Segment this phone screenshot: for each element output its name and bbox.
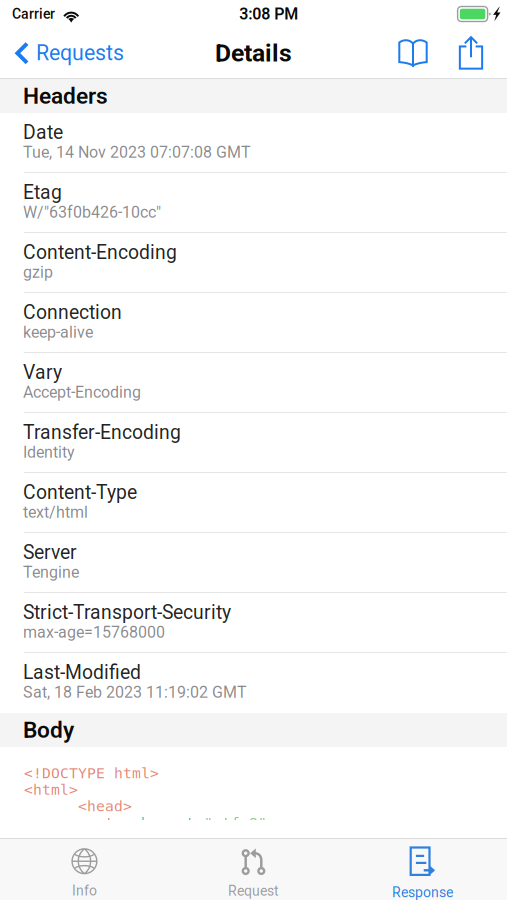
staticText: Tengine [23, 563, 79, 582]
staticText: max-age=15768000 [23, 623, 165, 642]
staticText: gzip [23, 263, 53, 282]
staticText: Content-Encoding [23, 241, 177, 264]
staticText: Strict-Transport-Security [23, 601, 231, 624]
staticText: Vary [23, 361, 62, 384]
staticText: Info [72, 882, 97, 899]
staticText: Etag [23, 181, 62, 204]
staticText: Last-Modified [23, 661, 141, 684]
staticText: <meta [78, 814, 123, 832]
staticText: Sat, 18 Feb 2023 11:19:02 GMT [23, 683, 247, 702]
staticText: charset [123, 814, 195, 832]
staticText: 3:08 PM [239, 5, 298, 23]
button[interactable]: Request [169, 839, 338, 900]
staticText: <html> [24, 781, 78, 798]
button[interactable]: Reader view [379, 28, 447, 78]
staticText: Server [23, 541, 77, 564]
staticText: Headers [23, 83, 108, 109]
staticText: Request [228, 883, 279, 899]
staticText: W/"63f0b426-10cc" [23, 203, 161, 222]
staticText: Response [392, 884, 453, 900]
staticText: Content-Type [23, 481, 137, 504]
staticText: Identity [23, 443, 75, 462]
staticText: Transfer-Encoding [23, 421, 181, 444]
button[interactable]: Response [338, 839, 507, 900]
staticText: "utf-8" [204, 814, 267, 832]
button[interactable]: Info [0, 839, 169, 900]
staticText: text/html [23, 503, 88, 522]
staticText: Date [23, 121, 63, 144]
staticText: Body [23, 717, 74, 743]
staticText: Tue, 14 Nov 2023 07:07:08 GMT [23, 143, 251, 162]
button[interactable]: Share [447, 28, 507, 78]
staticText: <!DOCTYPE html> [24, 765, 159, 782]
staticText: Requests [36, 40, 124, 65]
staticText: Details [215, 38, 292, 67]
staticText: <head> [24, 798, 132, 815]
staticText: Connection [23, 301, 122, 324]
button[interactable]: Requests [0, 28, 132, 78]
staticText: Accept-Encoding [23, 383, 141, 402]
staticText: Carrier [12, 6, 55, 22]
staticText: keep-alive [23, 323, 93, 342]
